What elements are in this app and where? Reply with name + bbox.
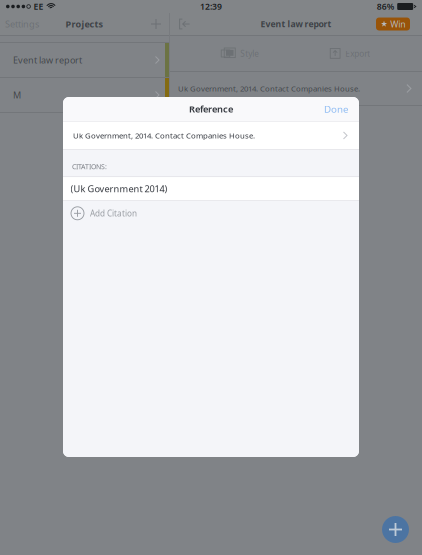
staticText: (Uk Government 2014): [70, 182, 167, 195]
staticText: Export: [345, 48, 370, 59]
button[interactable]: Toggle sidebar: [170, 13, 198, 35]
staticText: CITATIONS:: [72, 162, 107, 171]
staticText: 12:39: [200, 1, 222, 12]
button[interactable]: Uk Government, 2014. Contact Companies H…: [170, 72, 422, 105]
button[interactable]: Add: [382, 516, 409, 543]
button[interactable]: Event law report: [0, 43, 169, 77]
staticText: Uk Government, 2014. Contact Companies H…: [178, 83, 360, 94]
button[interactable]: Uk Government, 2014. Contact Companies H…: [63, 122, 359, 149]
button[interactable]: (Uk Government 2014): [63, 177, 359, 200]
staticText: Add Citation: [90, 208, 137, 219]
button[interactable]: Settings: [0, 13, 45, 35]
staticText: Event law report: [13, 54, 82, 66]
staticText: Projects: [65, 18, 103, 30]
staticText: Event law report: [260, 18, 331, 30]
staticText: Reference: [189, 103, 233, 115]
staticText: M: [13, 89, 21, 101]
button[interactable]: Win: [376, 17, 410, 30]
button[interactable]: Done: [313, 97, 359, 121]
staticText: Done: [324, 102, 348, 116]
staticText: Win: [390, 18, 405, 30]
staticText: Style: [240, 48, 259, 59]
staticText: Settings: [5, 18, 39, 30]
staticText: Uk Government, 2014. Contact Companies H…: [73, 130, 255, 141]
staticText: 86%: [377, 1, 395, 12]
button[interactable]: Add Citation: [63, 201, 359, 226]
button[interactable]: M: [0, 78, 169, 112]
staticText: EE: [33, 1, 43, 12]
